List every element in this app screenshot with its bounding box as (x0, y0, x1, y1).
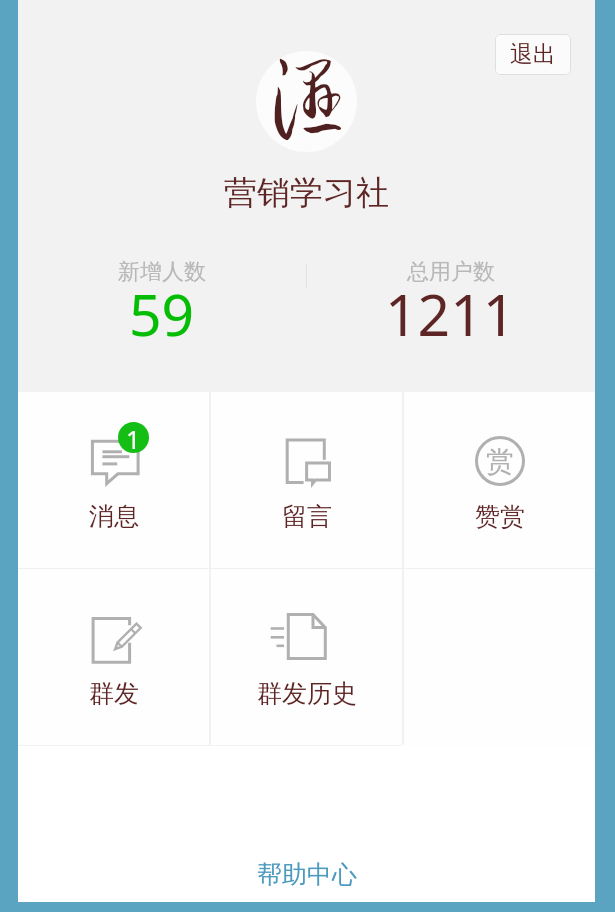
button[interactable]: Broadcast history (211, 569, 402, 745)
button[interactable]: Comments (211, 392, 402, 568)
staticText: 赞赏 (475, 501, 525, 532)
staticText: 1 (126, 422, 141, 453)
button[interactable]: Broadcast (18, 569, 209, 745)
staticText: 1211 (385, 275, 516, 353)
staticText: 新增人数 (118, 258, 206, 286)
staticText: 赏 (486, 444, 514, 479)
button[interactable]: 退出 (495, 34, 571, 75)
staticText: 59 (129, 275, 195, 353)
button[interactable]: Rewards (404, 392, 595, 568)
staticText: 帮助中心 (257, 859, 357, 890)
staticText: 总用户数 (407, 258, 495, 286)
staticText: 群发 (89, 678, 139, 709)
staticText: 退出 (510, 40, 556, 69)
staticText: 湿 (261, 51, 355, 141)
button[interactable]: Messages (18, 392, 209, 568)
staticText: 消息 (89, 501, 139, 532)
staticText: 营销学习社 (224, 172, 389, 214)
staticText: 群发历史 (257, 678, 357, 709)
button[interactable]: 帮助中心 (243, 851, 371, 898)
staticText: 留言 (282, 501, 332, 532)
